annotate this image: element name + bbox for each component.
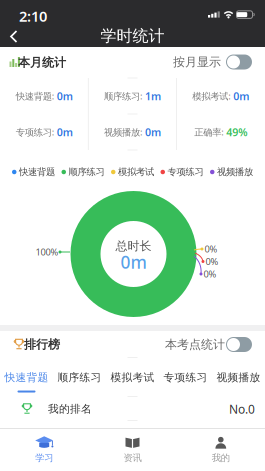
staticText: 0m: [145, 125, 161, 139]
staticText: 0m: [120, 250, 146, 273]
button[interactable]: 快速背题: [0, 358, 53, 397]
staticText: 0%: [204, 243, 217, 255]
staticText: 本考点统计: [165, 337, 225, 352]
staticText: 0%: [203, 268, 216, 280]
staticText: 本月统计: [18, 55, 66, 70]
staticText: 视频播放: [217, 166, 253, 178]
staticText: 快速背题: [4, 371, 48, 384]
staticText: 49%: [226, 125, 247, 139]
staticText: 学时统计: [100, 26, 164, 46]
staticText: 顺序练习: [57, 371, 101, 384]
staticText: 2:10: [19, 6, 47, 26]
staticText: 专项练习:: [16, 126, 57, 138]
staticText: 顺序练习:: [104, 90, 145, 102]
staticText: 100%: [35, 246, 58, 258]
staticText: 0%: [205, 255, 218, 268]
staticText: 专项练习: [167, 166, 203, 178]
button[interactable]: 视频播放: [212, 358, 265, 397]
staticText: 总时长: [115, 239, 151, 253]
staticText: 快速背题:: [16, 90, 57, 102]
button[interactable]: 学习: [0, 429, 88, 471]
staticText: 视频播放:: [104, 126, 145, 138]
staticText: 学习: [35, 452, 53, 464]
staticText: 我的: [212, 452, 230, 464]
button[interactable]: 我的: [177, 429, 265, 471]
staticText: 1m: [145, 89, 161, 103]
staticText: 0m: [233, 89, 249, 103]
staticText: 0m: [57, 89, 73, 103]
staticText: 视频播放: [216, 371, 260, 384]
staticText: 模拟考试:: [192, 90, 233, 102]
button[interactable]: Back: [0, 26, 28, 47]
staticText: 我的排名: [48, 402, 92, 415]
staticText: 正确率:: [194, 126, 226, 138]
staticText: No.0: [229, 401, 255, 417]
staticText: 按月显示: [173, 55, 221, 69]
staticText: 专项练习: [163, 371, 207, 384]
button[interactable]: 专项练习: [159, 358, 212, 397]
staticText: 模拟考试: [118, 166, 154, 178]
staticText: 0m: [57, 125, 73, 139]
button[interactable]: 按月显示: [226, 54, 252, 69]
button[interactable]: 顺序练习: [53, 358, 106, 397]
button[interactable]: 模拟考试: [106, 358, 159, 397]
staticText: 顺序练习: [68, 166, 104, 178]
staticText: 资讯: [123, 452, 141, 464]
staticText: 快速背题: [19, 166, 55, 178]
staticText: 排行榜: [24, 337, 60, 352]
button[interactable]: 资讯: [88, 429, 177, 471]
button[interactable]: 本考点统计: [226, 337, 252, 352]
staticText: 模拟考试: [110, 371, 154, 384]
